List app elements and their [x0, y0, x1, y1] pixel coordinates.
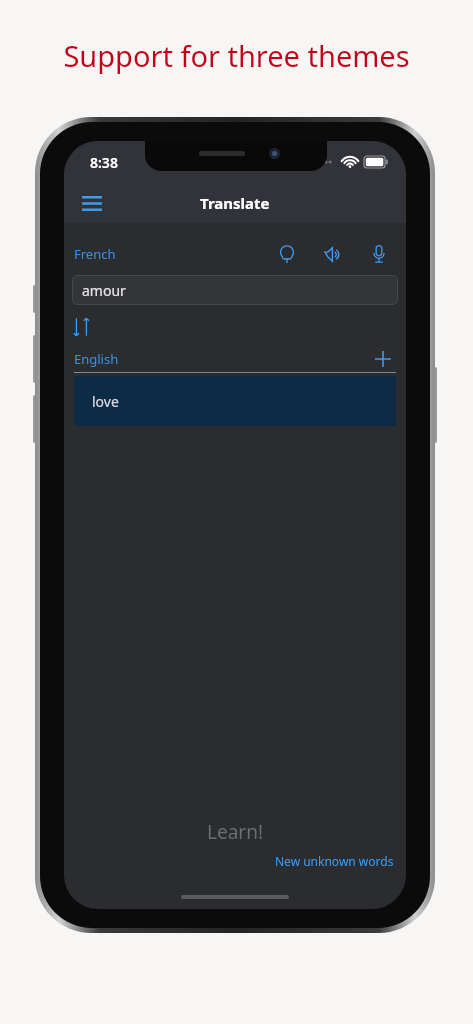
staticText: Translate	[200, 193, 270, 213]
staticText: 8:38	[90, 153, 118, 172]
staticText: Support for three themes	[0, 36, 473, 75]
staticText: New unknown words	[275, 853, 394, 869]
button[interactable]: Add word	[368, 346, 398, 372]
staticText: English	[74, 350, 119, 368]
button[interactable]: Hint	[270, 239, 304, 269]
button[interactable]: French	[72, 245, 118, 263]
button[interactable]: Voice input	[362, 239, 396, 269]
button[interactable]: Swap languages	[72, 314, 108, 340]
button[interactable]: love	[74, 376, 396, 426]
staticText: love	[92, 392, 119, 411]
button[interactable]: Learn!	[72, 819, 398, 845]
staticText: amour	[82, 281, 126, 300]
button[interactable]: amour	[72, 275, 398, 305]
button[interactable]: New unknown words	[275, 853, 398, 869]
button[interactable]: Listen	[316, 239, 350, 269]
button[interactable]: Open navigation menu	[72, 183, 112, 223]
staticText: French	[74, 245, 116, 263]
button[interactable]: English	[72, 350, 121, 368]
